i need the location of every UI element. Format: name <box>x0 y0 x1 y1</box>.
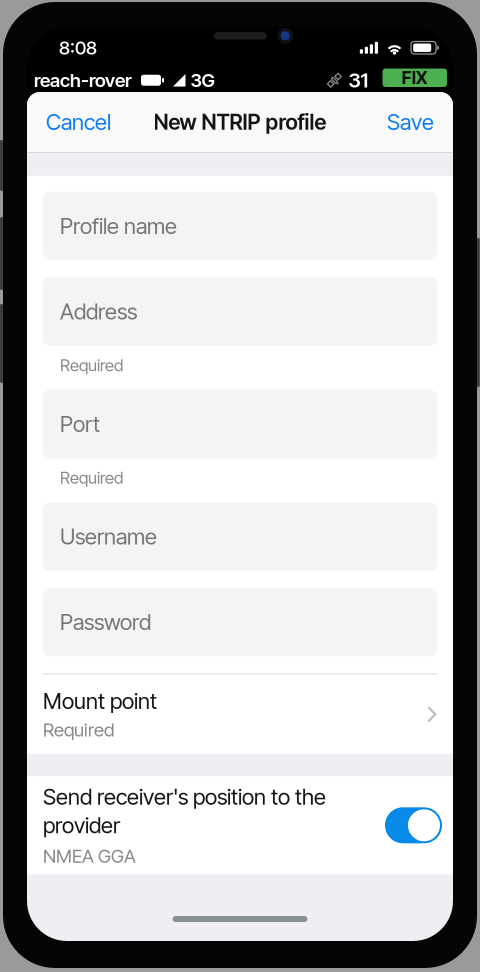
staticText: 31 <box>348 68 368 92</box>
staticText: 8:08 <box>59 36 97 59</box>
staticText: NMEA GGA <box>43 845 136 867</box>
staticText: Profile name <box>60 213 177 239</box>
staticText: Required <box>60 468 123 488</box>
staticText: New NTRIP profile <box>153 109 326 135</box>
staticText: Mount point <box>43 688 157 714</box>
button[interactable]: Save <box>381 99 440 145</box>
staticText: Username <box>60 523 157 550</box>
staticText: reach-rover <box>34 69 132 92</box>
staticText: provider <box>43 812 120 839</box>
button[interactable]: Cancel <box>40 99 117 145</box>
button[interactable]: Port <box>43 390 437 458</box>
staticText: 3G <box>190 69 214 92</box>
staticText: FIX <box>402 67 428 88</box>
button[interactable]: Username <box>43 502 437 571</box>
staticText: Password <box>60 609 151 635</box>
button[interactable]: Profile name <box>43 192 437 260</box>
staticText: Port <box>60 411 100 437</box>
button[interactable]: Password <box>43 588 437 656</box>
button[interactable]: Mount point <box>27 674 453 754</box>
staticText: Address <box>60 298 137 325</box>
button[interactable]: Send receiver's position to the provider <box>385 807 442 843</box>
button[interactable]: Address <box>43 277 437 346</box>
staticText: Save <box>387 109 434 135</box>
staticText: Send receiver's position to the <box>43 783 326 810</box>
staticText: Required <box>43 718 114 741</box>
staticText: Cancel <box>46 109 111 135</box>
staticText: Required <box>60 355 123 375</box>
